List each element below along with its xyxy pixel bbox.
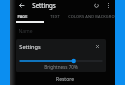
staticText: TEXT [50,14,60,19]
button[interactable]: Close [93,42,102,51]
staticText: Settings [32,1,56,9]
button[interactable]: Back [16,0,26,10]
staticText: Name [18,28,33,35]
button[interactable]: Refresh [91,0,102,10]
button[interactable]: COLORS AND BACKGROUND [66,12,125,21]
button[interactable] [16,57,106,65]
staticText: Settings [19,43,41,51]
staticText: COLORS AND BACKGROUND [68,14,124,19]
staticText: Brightness 70% [44,64,78,70]
staticText: PAGE [17,14,28,19]
button[interactable]: More options [103,0,113,10]
button[interactable]: PAGE [0,12,44,21]
staticText: Restore [56,76,74,83]
button[interactable]: TEXT [44,12,66,21]
button[interactable]: Restore [50,76,80,83]
